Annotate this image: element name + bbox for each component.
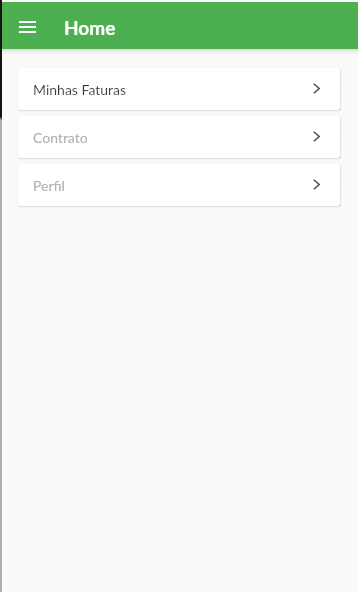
button[interactable]: Open navigation menu xyxy=(10,8,44,42)
button[interactable]: Contrato xyxy=(18,116,340,158)
staticText: Home xyxy=(64,16,116,39)
staticText: Contrato xyxy=(33,129,88,146)
button[interactable]: Minhas Faturas xyxy=(18,68,340,110)
staticText: Minhas Faturas xyxy=(33,81,127,98)
button[interactable]: Perfil xyxy=(18,164,340,206)
staticText: Perfil xyxy=(33,177,65,194)
